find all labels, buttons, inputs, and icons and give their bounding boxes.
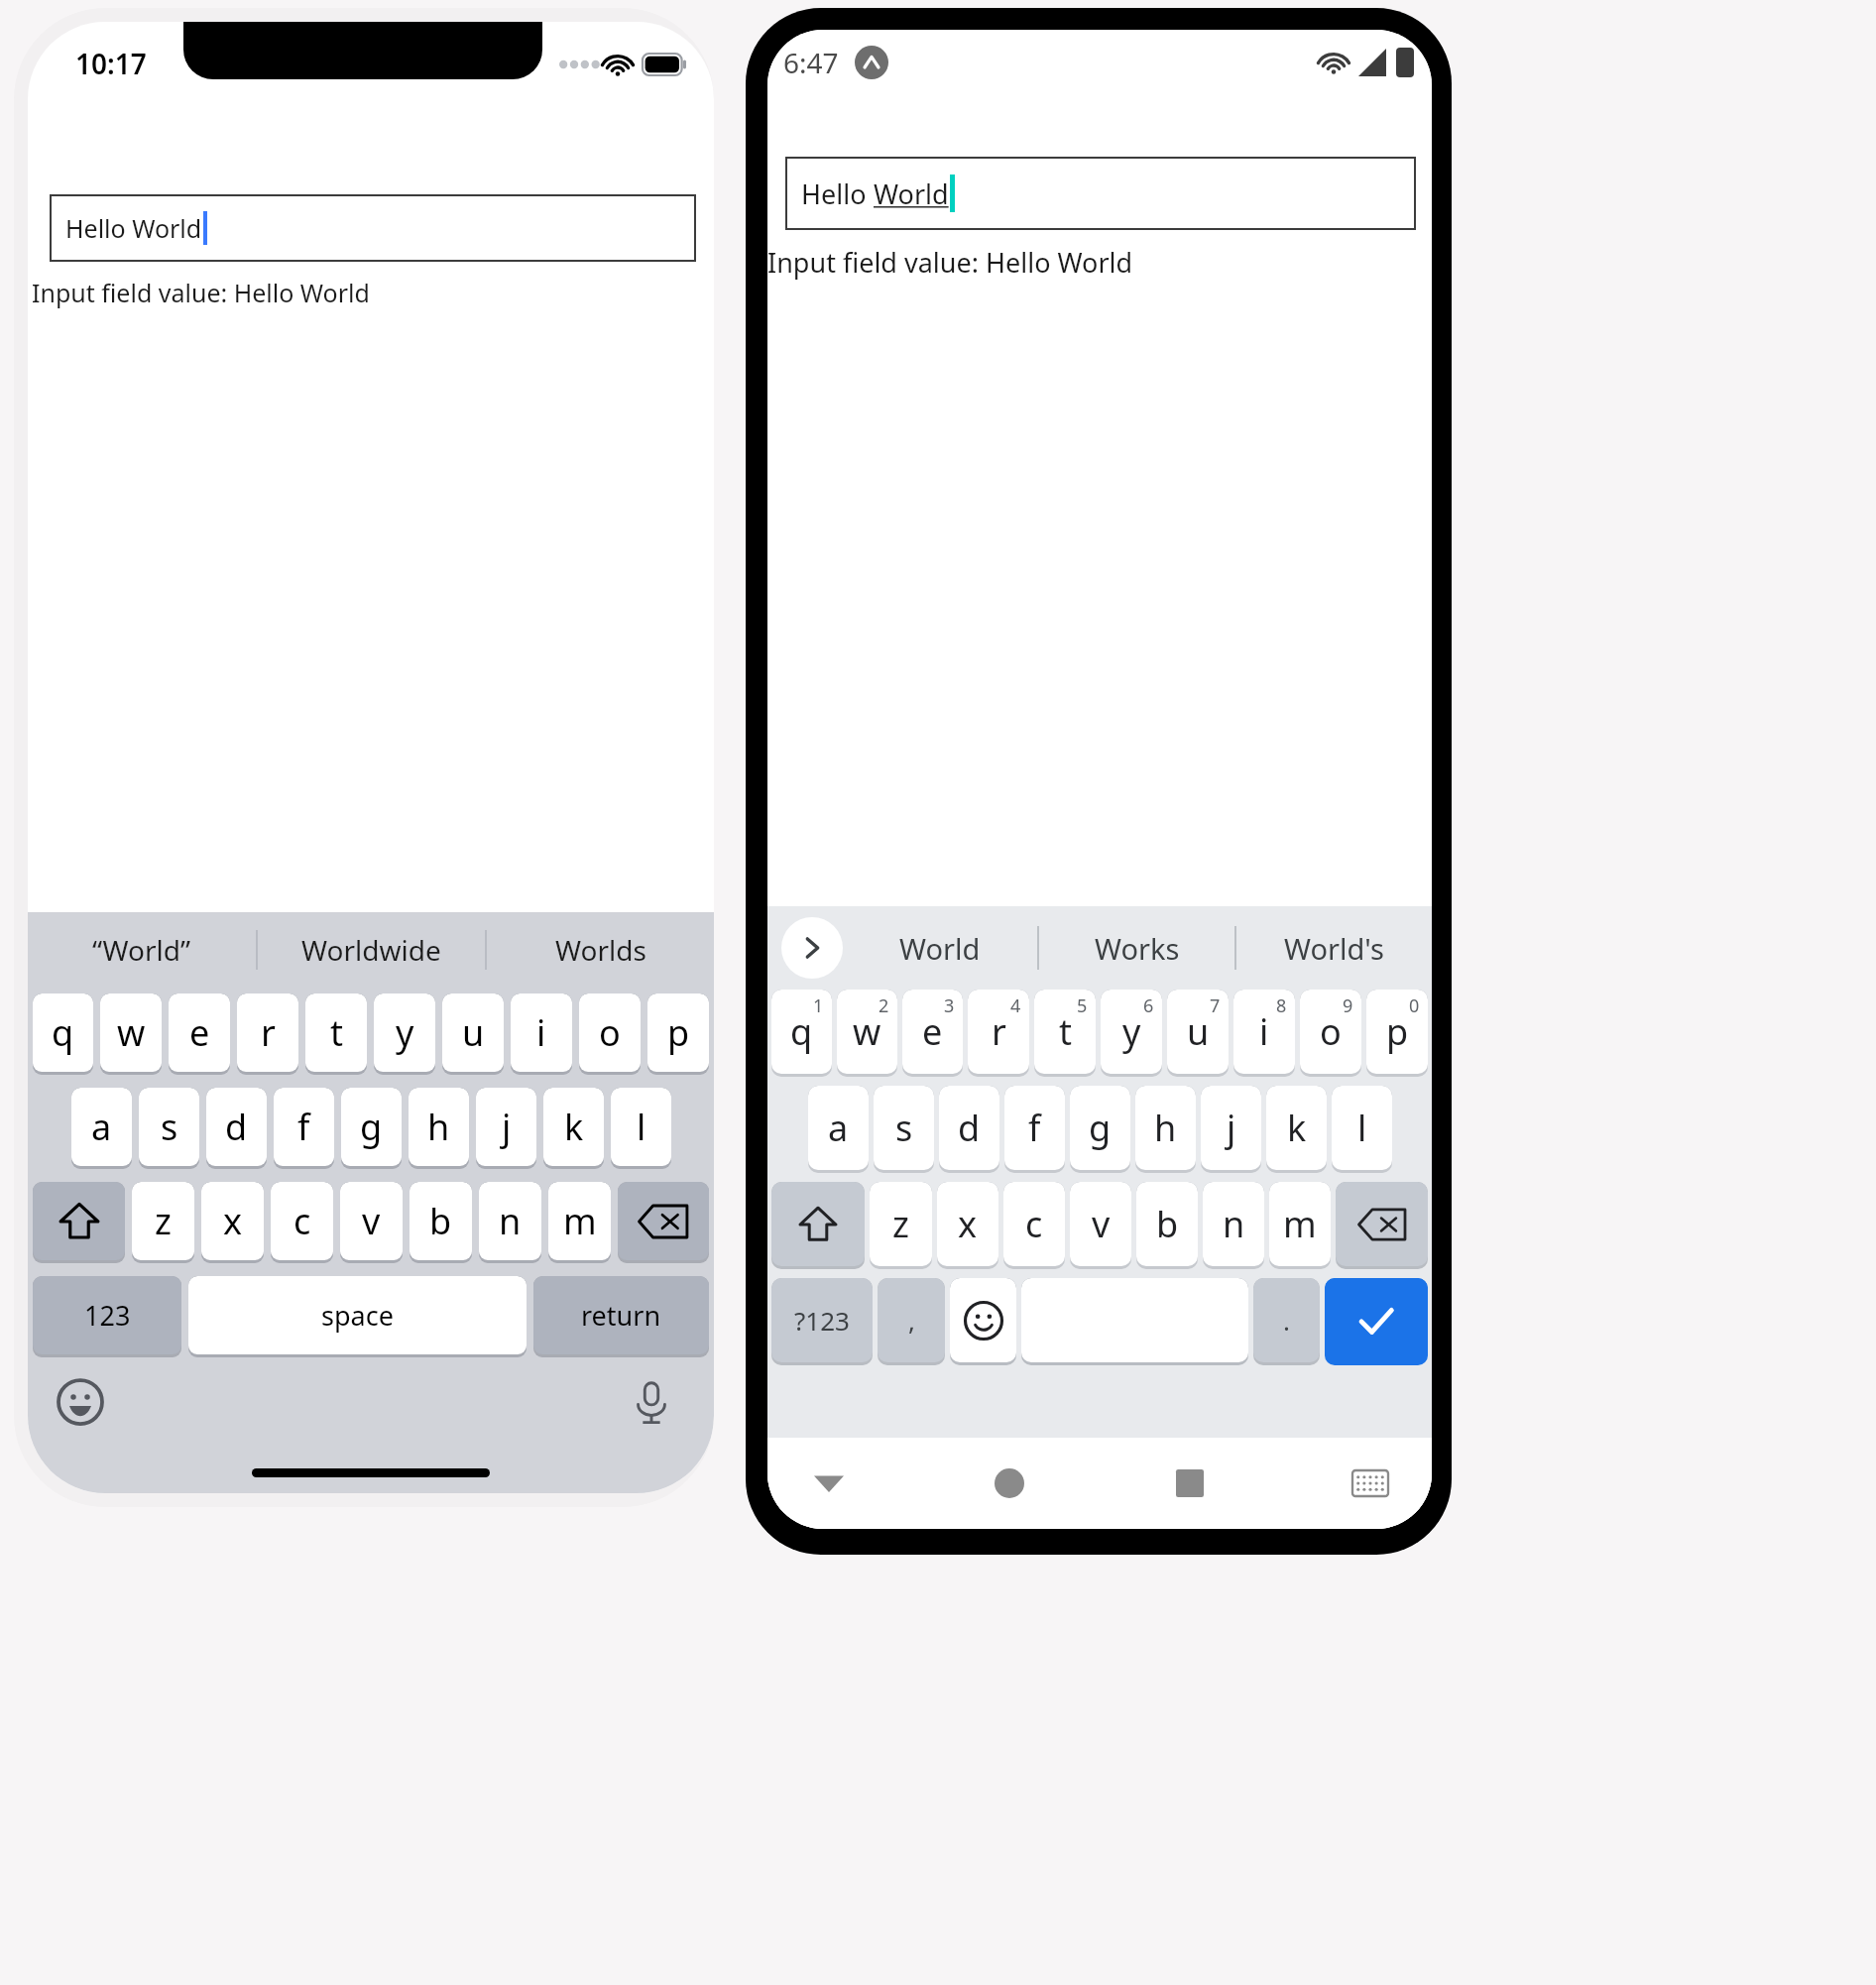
button[interactable]: d — [939, 1086, 999, 1173]
staticText: d — [958, 1104, 981, 1152]
button[interactable]: p — [647, 993, 709, 1075]
button[interactable]: o — [1300, 990, 1361, 1077]
button[interactable]: Hello World — [50, 194, 696, 262]
staticText: l — [1357, 1104, 1367, 1152]
button[interactable]: a — [71, 1088, 132, 1169]
button[interactable]: g — [1070, 1086, 1130, 1173]
button[interactable]: c — [1003, 1182, 1065, 1269]
staticText: 9 — [1343, 993, 1353, 1018]
staticText: u — [1187, 1007, 1210, 1056]
button[interactable]: Backspace — [1336, 1182, 1428, 1269]
button[interactable]: Keyboard switcher — [1343, 1456, 1398, 1511]
button[interactable]: n — [1203, 1182, 1264, 1269]
button[interactable]: q — [771, 990, 832, 1077]
button[interactable]: ?123 — [771, 1278, 873, 1365]
button[interactable]: return — [533, 1276, 709, 1357]
button[interactable]: space — [188, 1276, 527, 1357]
button[interactable]: m — [548, 1182, 611, 1263]
button[interactable]: l — [1332, 1086, 1392, 1173]
button[interactable]: a — [808, 1086, 869, 1173]
button[interactable]: y — [374, 993, 435, 1075]
button[interactable]: Recents — [1162, 1456, 1218, 1511]
button[interactable]: w — [100, 993, 162, 1075]
button[interactable]: d — [206, 1088, 267, 1169]
button[interactable]: t — [1034, 990, 1096, 1077]
staticText: b — [429, 1197, 452, 1245]
button[interactable]: i — [511, 993, 572, 1075]
button[interactable]: Home — [982, 1456, 1037, 1511]
button[interactable]: q — [33, 993, 93, 1075]
button[interactable]: f — [274, 1088, 334, 1169]
button[interactable]: r — [968, 990, 1029, 1077]
button[interactable]: m — [1269, 1182, 1331, 1269]
button[interactable]: j — [476, 1088, 536, 1169]
button[interactable]: b — [410, 1182, 472, 1263]
button[interactable]: f — [1004, 1086, 1065, 1173]
button[interactable]: i — [1233, 990, 1295, 1077]
button[interactable]: World — [843, 906, 1037, 990]
button[interactable]: s — [139, 1088, 199, 1169]
button[interactable]: 123 — [33, 1276, 181, 1357]
button[interactable]: t — [305, 993, 367, 1075]
staticText: u — [462, 1008, 485, 1057]
button[interactable]: e — [902, 990, 963, 1077]
button[interactable]: h — [1135, 1086, 1196, 1173]
button[interactable]: Worldwide — [258, 912, 485, 988]
button[interactable]: “World” — [28, 912, 256, 988]
button[interactable]: s — [874, 1086, 934, 1173]
button[interactable]: x — [937, 1182, 998, 1269]
button[interactable]: Hello — [785, 157, 1416, 230]
staticText: g — [360, 1103, 383, 1151]
button[interactable]: World's — [1236, 906, 1432, 990]
button[interactable]: k — [543, 1088, 604, 1169]
button[interactable]: Shift — [33, 1182, 125, 1263]
button[interactable]: j — [1201, 1086, 1261, 1173]
button[interactable]: , — [878, 1278, 945, 1365]
button[interactable]: r — [237, 993, 298, 1075]
button[interactable] — [1021, 1278, 1248, 1365]
button[interactable]: Back — [801, 1456, 857, 1511]
button[interactable]: c — [271, 1182, 333, 1263]
button[interactable]: Emoji — [950, 1278, 1016, 1365]
button[interactable]: e — [169, 993, 230, 1075]
button[interactable]: x — [201, 1182, 264, 1263]
button[interactable]: h — [409, 1088, 469, 1169]
button[interactable]: Emoji — [54, 1375, 107, 1429]
staticText: . — [1283, 1303, 1290, 1338]
button[interactable]: z — [132, 1182, 194, 1263]
staticText: y — [1122, 1007, 1141, 1056]
button[interactable]: Done — [1325, 1278, 1428, 1365]
button[interactable]: w — [837, 990, 897, 1077]
staticText: j — [502, 1103, 512, 1151]
button[interactable]: b — [1136, 1182, 1198, 1269]
button[interactable]: p — [1366, 990, 1428, 1077]
button[interactable]: z — [870, 1182, 932, 1269]
staticText: space — [321, 1297, 394, 1334]
button[interactable]: u — [1167, 990, 1229, 1077]
staticText: p — [667, 1008, 690, 1057]
staticText: f — [1028, 1104, 1041, 1152]
staticText: y — [396, 1008, 414, 1057]
staticText: Input field value: Hello World — [767, 244, 1133, 281]
staticText: 3 — [944, 993, 955, 1018]
button[interactable]: u — [442, 993, 504, 1075]
button[interactable]: n — [479, 1182, 541, 1263]
button[interactable]: v — [1070, 1182, 1131, 1269]
button[interactable]: y — [1101, 990, 1162, 1077]
button[interactable]: Worlds — [487, 912, 714, 988]
button[interactable]: Works — [1039, 906, 1234, 990]
button[interactable]: o — [579, 993, 641, 1075]
staticText: World — [899, 929, 981, 968]
button[interactable]: Dictation — [625, 1375, 678, 1429]
button[interactable]: l — [611, 1088, 671, 1169]
staticText: 6 — [1143, 993, 1154, 1018]
button[interactable]: Backspace — [618, 1182, 709, 1263]
button[interactable]: k — [1266, 1086, 1327, 1173]
staticText: f — [297, 1103, 310, 1151]
staticText: 6:47 — [783, 44, 839, 81]
button[interactable]: More suggestions — [781, 917, 843, 979]
button[interactable]: . — [1253, 1278, 1320, 1365]
button[interactable]: v — [340, 1182, 403, 1263]
button[interactable]: g — [341, 1088, 402, 1169]
button[interactable]: Shift — [771, 1182, 865, 1269]
